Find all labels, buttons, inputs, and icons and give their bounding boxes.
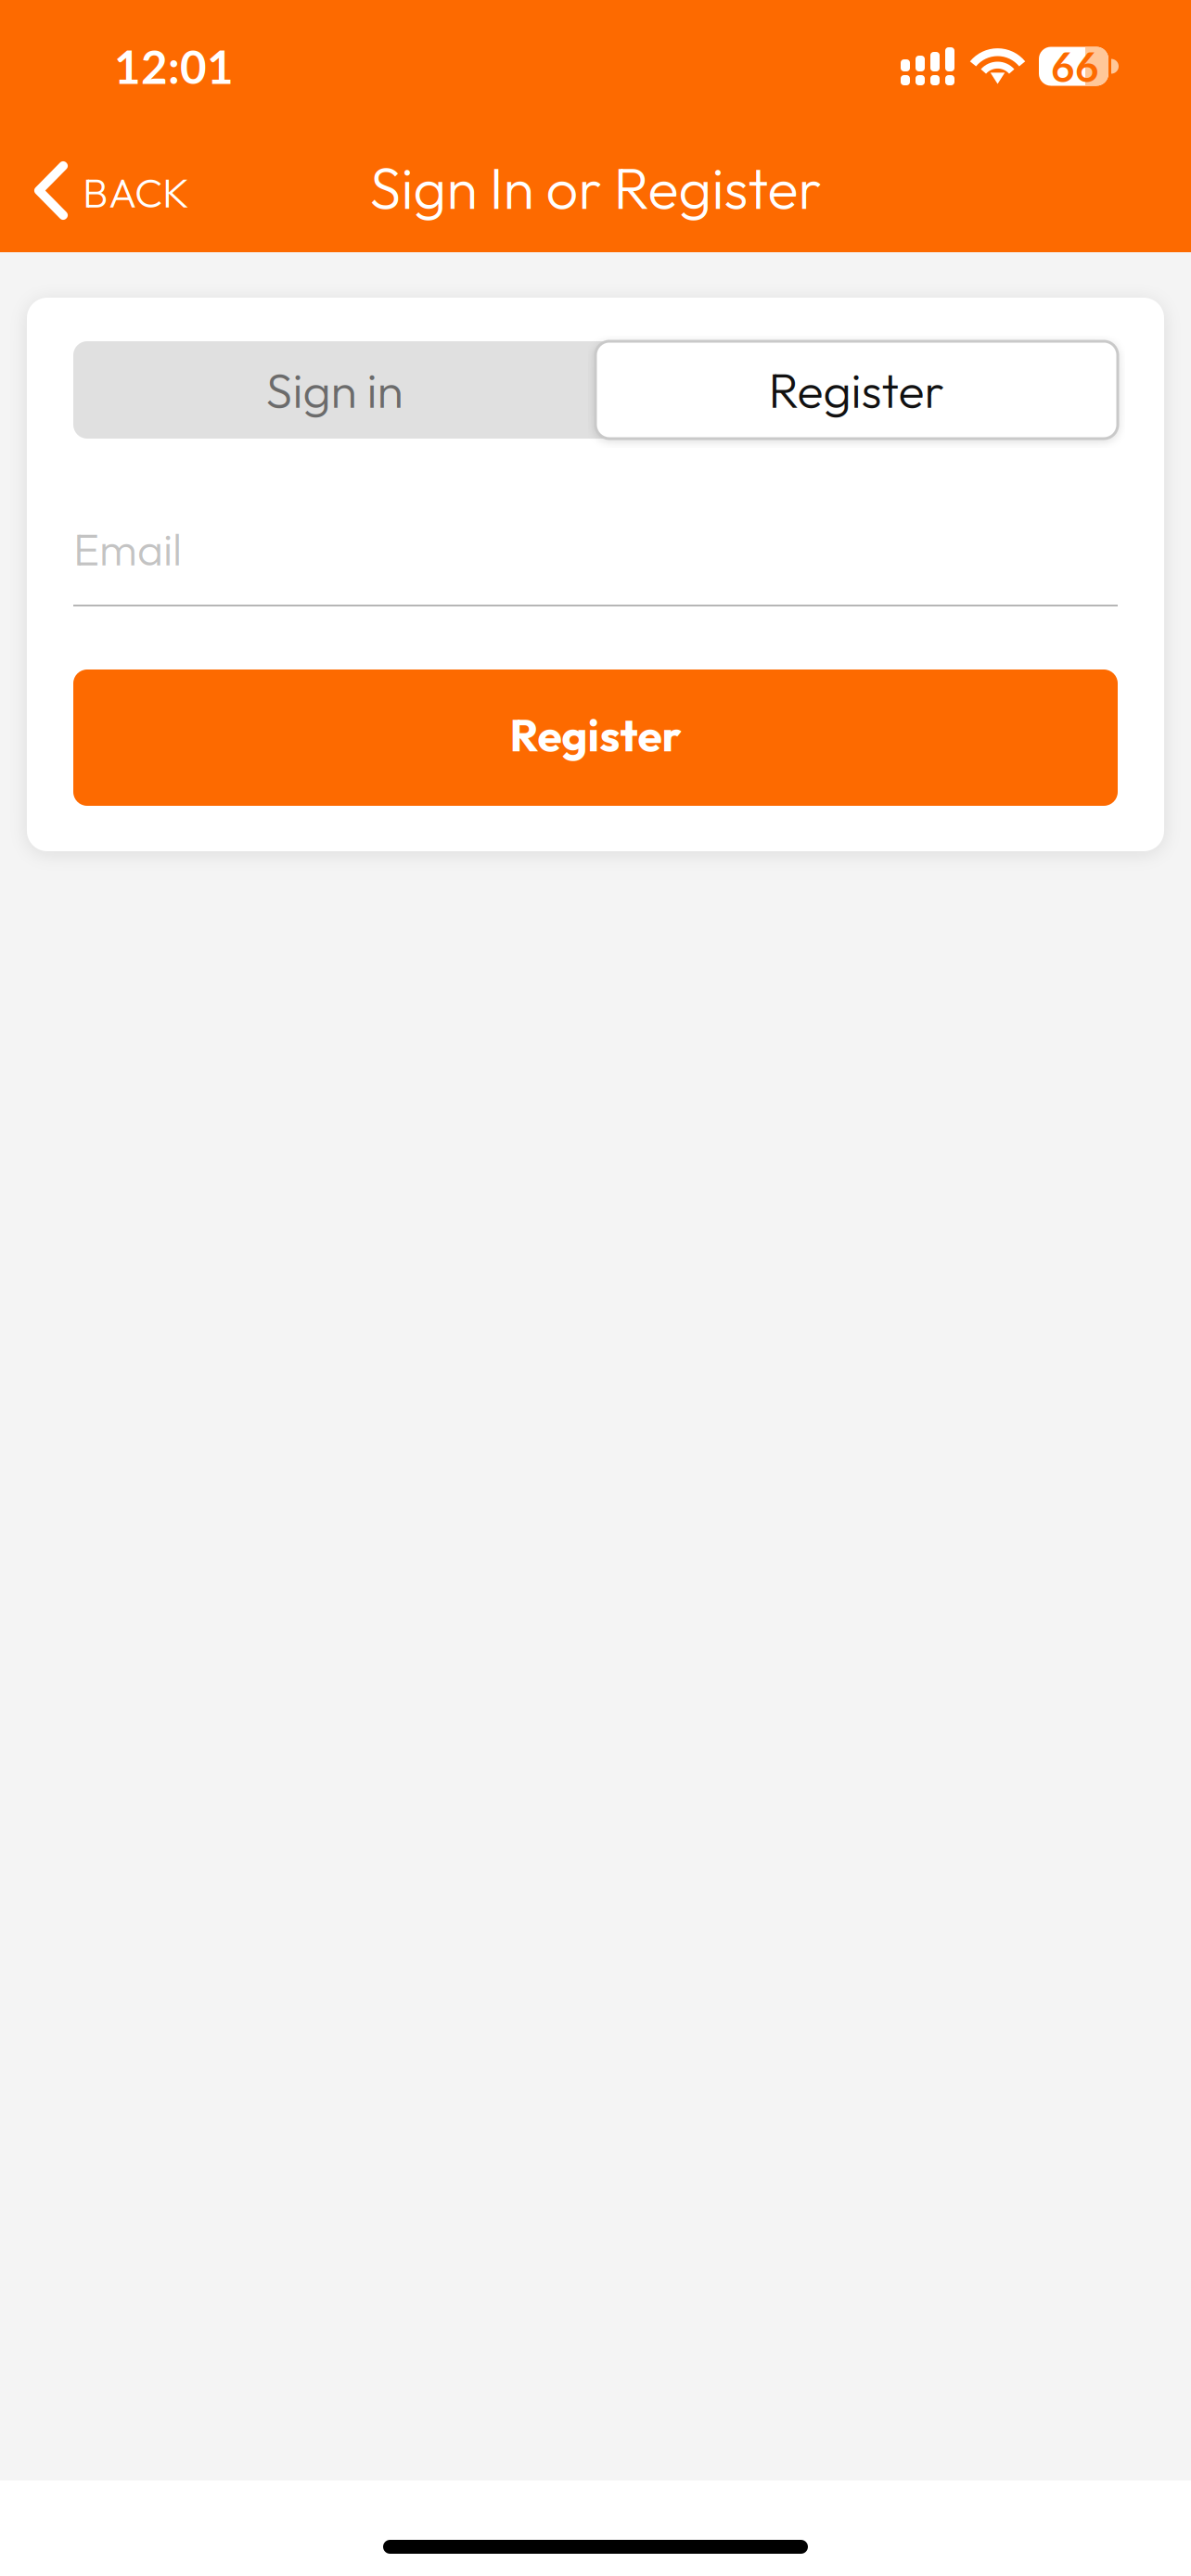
staticText: Sign in xyxy=(266,360,403,420)
staticText: BACK xyxy=(83,167,189,218)
button[interactable]: Sign in xyxy=(73,341,595,439)
button[interactable]: Email xyxy=(73,507,1118,606)
button[interactable]: Register xyxy=(73,670,1118,806)
staticText: 66 xyxy=(1051,42,1099,91)
staticText: Register xyxy=(768,360,945,420)
staticText: Sign In or Register xyxy=(370,152,821,224)
staticText: 12:01 xyxy=(114,39,234,94)
button[interactable]: Register xyxy=(595,341,1118,439)
staticText: Register xyxy=(510,707,681,763)
button[interactable]: Back xyxy=(0,116,215,252)
staticText: Email xyxy=(73,521,182,577)
